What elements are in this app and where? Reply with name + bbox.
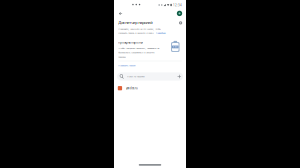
staticText: безопасность сохранённых в аккаунте [118,51,154,54]
button[interactable]: Проверить пароли [114,62,140,68]
staticText: Проверка паролей [118,41,143,44]
staticText: Поиск по паролям [127,75,145,78]
staticText: сохранить пароль в аккаунте Google. [118,31,154,34]
staticText: паролей. [118,55,126,58]
button[interactable]: Add password [177,74,181,79]
button[interactable]: Back [116,10,125,18]
button[interactable]: yandex.ru [114,84,186,92]
staticText: Чтобы защитить аккаунты, проверьте их [118,46,159,50]
staticText: Приходите, нажмите на эту кнопку, чтобы [118,27,161,31]
staticText: Проверить пароли [118,64,135,67]
staticText: 12:34 [173,3,182,7]
staticText: yandex.ru [126,86,138,90]
staticText: Диспетчер паролей [118,20,152,25]
staticText: Подробнее [156,31,166,34]
button[interactable]: Account [175,9,184,17]
button[interactable]: Settings [178,20,184,26]
button[interactable]: Подробнее [156,31,166,34]
